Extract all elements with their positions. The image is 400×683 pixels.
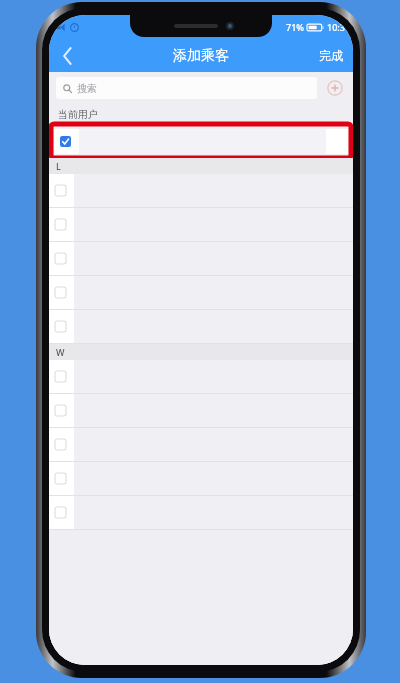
button[interactable] [49, 360, 353, 393]
button[interactable]: 完成 [309, 39, 353, 72]
button[interactable]: Add passenger [324, 77, 346, 99]
staticText: 完成 [319, 48, 343, 63]
button[interactable] [49, 208, 353, 241]
button[interactable] [49, 276, 353, 309]
button[interactable] [49, 174, 353, 207]
button[interactable] [49, 462, 353, 495]
staticText: 10:3 [327, 21, 345, 33]
button[interactable] [49, 242, 353, 275]
staticText: W [56, 346, 65, 358]
staticText: L [56, 160, 61, 172]
button[interactable] [49, 394, 353, 427]
staticText: 添加乘客 [173, 47, 229, 65]
button[interactable] [49, 310, 353, 343]
button[interactable] [49, 496, 353, 529]
button[interactable] [54, 129, 348, 154]
staticText: 71% [286, 21, 304, 33]
button[interactable] [49, 428, 353, 461]
button[interactable]: 搜索 [56, 77, 317, 99]
staticText: 当前用户 [58, 108, 98, 121]
staticText: 搜索 [77, 82, 97, 95]
button[interactable]: Back [49, 39, 85, 72]
